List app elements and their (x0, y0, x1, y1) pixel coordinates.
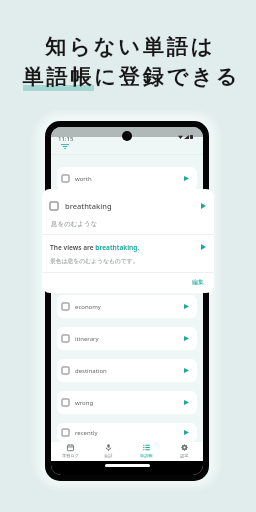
button[interactable]: vacancy (57, 263, 197, 286)
staticText: breathtaking (65, 201, 112, 211)
staticText: The views are breathtaking. (50, 243, 140, 252)
button[interactable]: 会話 (89, 442, 127, 461)
button[interactable]: breathtaking (57, 199, 197, 222)
button[interactable]: economy (57, 295, 197, 318)
staticText: 編集 (192, 278, 204, 285)
button[interactable]: Filter (61, 144, 69, 149)
staticText: destination (75, 367, 107, 375)
staticText: 息をのむような (51, 220, 98, 228)
staticText: 学習ログ (62, 453, 79, 458)
button[interactable]: 設定 (165, 442, 203, 461)
button[interactable]: wrong (57, 391, 197, 414)
other: Play (201, 203, 206, 209)
staticText: worth (75, 175, 92, 183)
button[interactable]: worth (57, 167, 197, 190)
button[interactable]: spare (57, 231, 197, 254)
button[interactable]: The views are breathtaking. (42, 239, 214, 267)
staticText: 単語帳に登録できる (22, 64, 240, 90)
staticText: 景色は息をのむようなものです。 (50, 257, 139, 264)
button[interactable]: breathtaking (42, 197, 214, 212)
button[interactable]: 学習ログ (51, 442, 89, 461)
staticText: 設定 (180, 453, 189, 458)
button[interactable]: destination (57, 359, 197, 382)
staticText: economy (75, 303, 101, 311)
button[interactable]: 編集 (179, 274, 214, 293)
staticText: wrong (75, 399, 94, 407)
button[interactable]: itinerary (57, 327, 197, 350)
staticText: 11:15 (58, 135, 74, 143)
staticText: vacancy (75, 271, 98, 279)
staticText: recently (75, 429, 98, 437)
other: Play sentence (201, 244, 206, 250)
staticText: 会話 (104, 453, 113, 458)
button[interactable]: 単語帳 (127, 442, 165, 461)
staticText: spare (75, 239, 91, 247)
button[interactable]: recently (57, 423, 197, 442)
staticText: itinerary (75, 335, 99, 343)
staticText: breathtaking (75, 207, 112, 215)
staticText: 単語帳 (140, 453, 153, 458)
staticText: 知らない単語は (45, 34, 215, 60)
